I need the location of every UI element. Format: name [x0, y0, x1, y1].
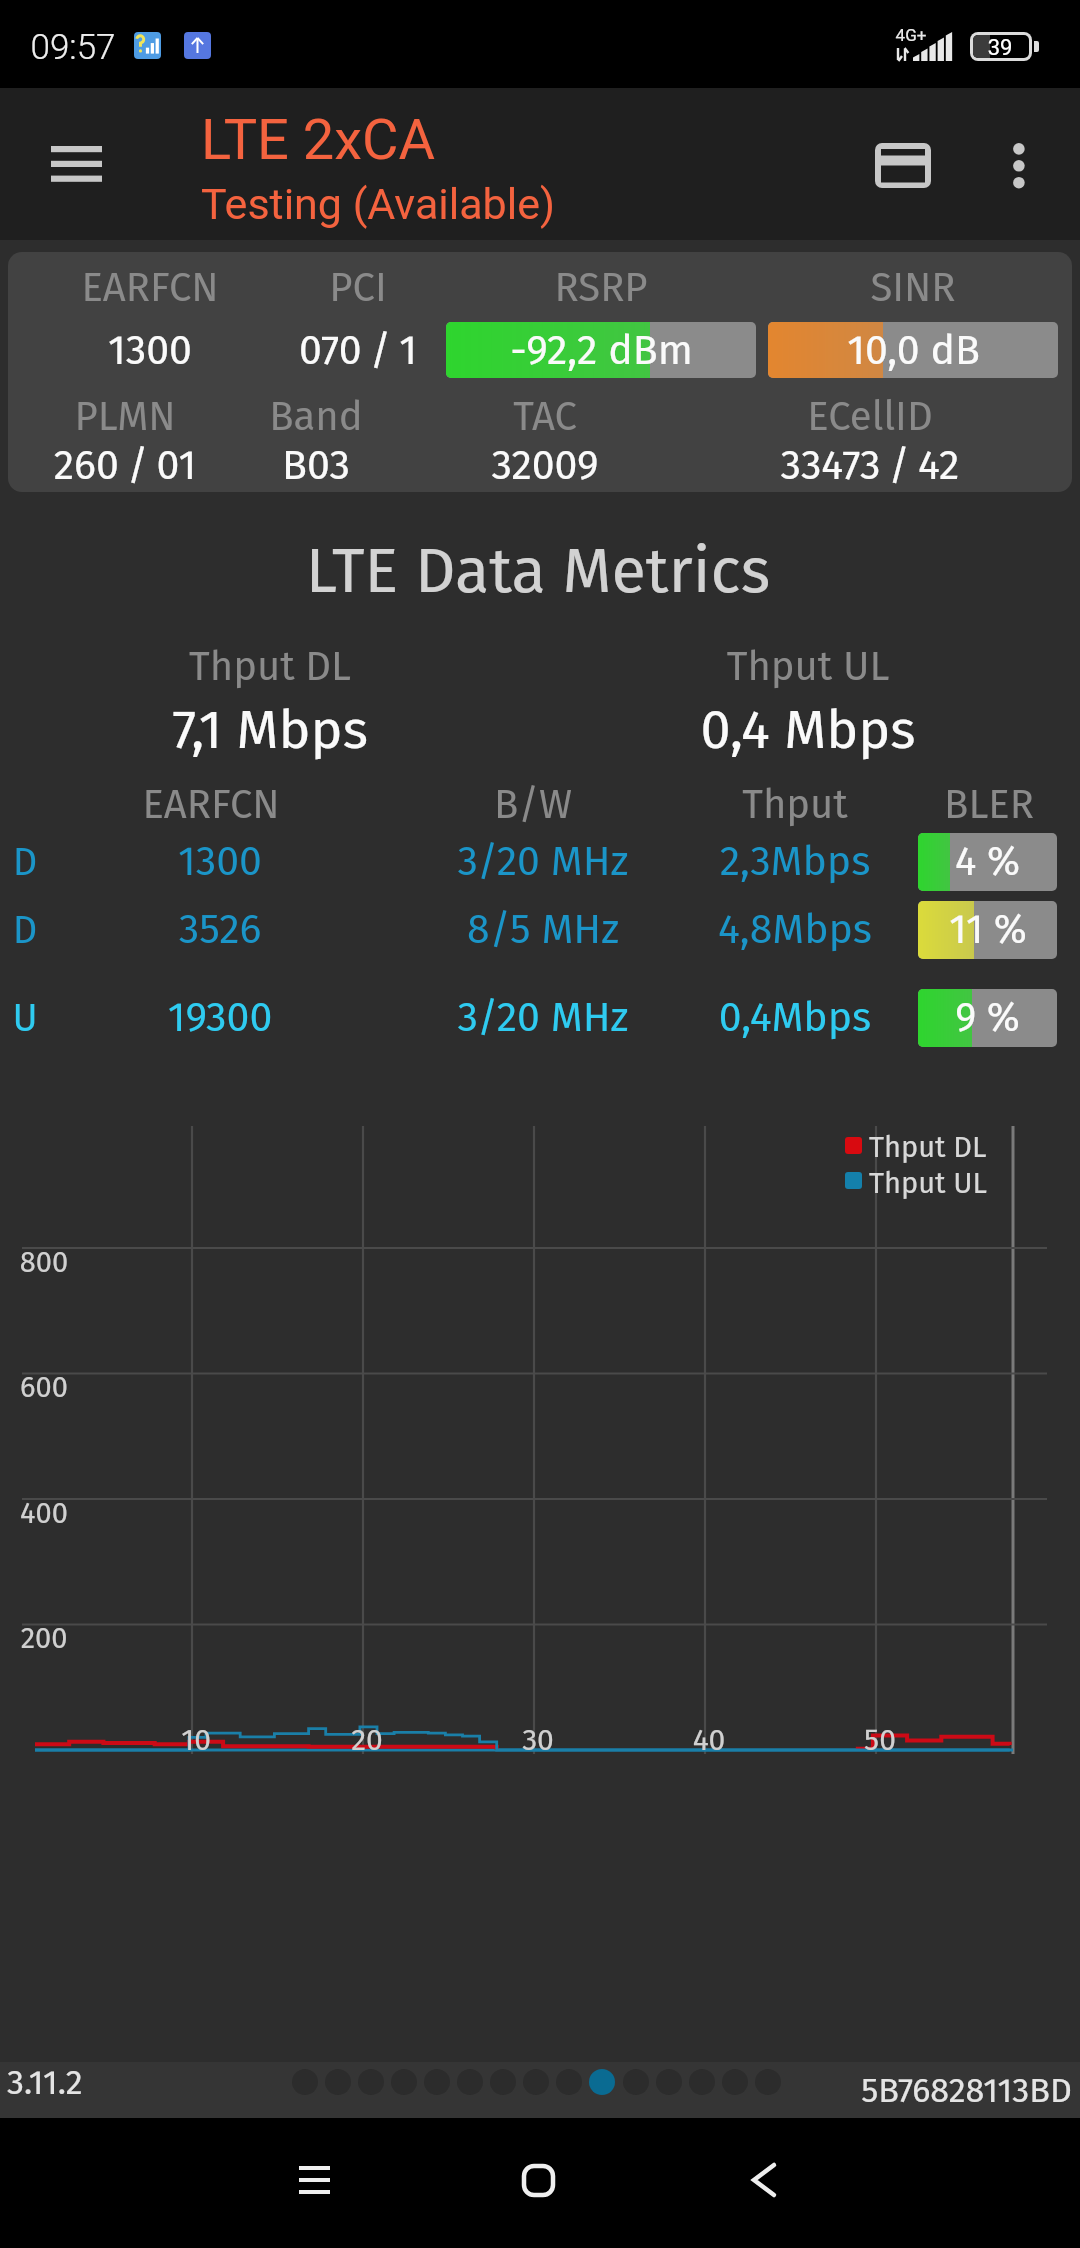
staticText: 260 / 01: [0, 441, 435, 490]
button[interactable]: Change layout: [848, 110, 958, 220]
staticText: Thput: [485, 781, 1080, 829]
button[interactable]: [722, 2069, 748, 2095]
staticText: PCI: [48, 264, 668, 312]
staticText: Testing (Available): [201, 179, 555, 229]
button[interactable]: [8, 252, 1072, 492]
staticText: SINR: [603, 264, 1080, 312]
staticText: LTE 2xCA: [201, 107, 436, 173]
button[interactable]: [755, 2069, 781, 2095]
staticText: B/W: [223, 781, 843, 829]
staticText: 400: [0, 1496, 354, 1531]
staticText: 070 / 1: [48, 326, 668, 375]
staticText: 10: [0, 1722, 506, 1758]
button[interactable]: [292, 2069, 318, 2095]
button[interactable]: [523, 2069, 549, 2095]
staticText: 3/20 MHz: [233, 993, 853, 1042]
button[interactable]: [391, 2069, 417, 2095]
staticText: 4G+: [601, 25, 1080, 45]
button[interactable]: [623, 2069, 649, 2095]
button[interactable]: [589, 2069, 615, 2095]
staticText: 5B76828113BD: [861, 2070, 1072, 2111]
staticText: Thput DL: [0, 643, 580, 691]
staticText: RSRP: [291, 264, 911, 312]
button[interactable]: Open navigation menu: [21, 109, 132, 220]
button[interactable]: More options: [964, 110, 1074, 220]
button[interactable]: [424, 2069, 450, 2095]
staticText: Thput UL: [498, 643, 1080, 691]
staticText: 3.11.2: [7, 2062, 83, 2103]
staticText: LTE Data Metrics: [228, 533, 848, 609]
staticText: 32009: [235, 441, 855, 490]
staticText: 20: [57, 1722, 677, 1758]
button[interactable]: Home: [483, 2125, 593, 2235]
staticText: 1300: [0, 837, 530, 886]
staticText: EARFCN: [0, 781, 521, 829]
staticText: 33473 / 42: [560, 441, 1080, 490]
staticText: 4 %: [955, 838, 1020, 886]
staticText: 11 %: [949, 906, 1027, 954]
staticText: EARFCN: [0, 264, 460, 312]
staticText: 800: [0, 1245, 354, 1280]
staticText: BLER: [679, 781, 1080, 829]
staticText: 0,4 Mbps: [498, 698, 1080, 763]
button[interactable]: [556, 2069, 582, 2095]
staticText: 9 %: [955, 994, 1020, 1042]
staticText: 40: [399, 1722, 1019, 1758]
button[interactable]: Recent apps: [259, 2125, 369, 2235]
staticText: 4,8Mbps: [485, 905, 1080, 954]
button[interactable]: [358, 2069, 384, 2095]
staticText: Thput UL: [869, 1166, 987, 1201]
staticText: PLMN: [0, 393, 435, 441]
staticText: 39: [690, 35, 1080, 61]
button[interactable]: [490, 2069, 516, 2095]
button[interactable]: [325, 2069, 351, 2095]
staticText: 30: [228, 1722, 848, 1758]
staticText: 19300: [0, 993, 530, 1042]
staticText: ECellID: [560, 393, 1080, 441]
staticText: 1300: [0, 326, 460, 375]
staticText: 10,0 dB: [847, 326, 980, 375]
staticText: 50: [570, 1722, 1080, 1758]
staticText: 7,1 Mbps: [0, 698, 580, 763]
staticText: U: [0, 995, 335, 1041]
staticText: 3/20 MHz: [233, 837, 853, 886]
staticText: 2,3Mbps: [485, 837, 1080, 886]
staticText: 09:57: [0, 27, 383, 68]
staticText: 600: [0, 1370, 354, 1405]
staticText: 8/5 MHz: [233, 905, 853, 954]
staticText: TAC: [235, 393, 855, 441]
staticText: Thput DL: [869, 1130, 987, 1165]
button[interactable]: [457, 2069, 483, 2095]
staticText: -92,2 dBm: [510, 326, 693, 375]
button[interactable]: [689, 2069, 715, 2095]
staticText: Band: [6, 393, 626, 441]
button[interactable]: [656, 2069, 682, 2095]
staticText: 3526: [0, 905, 530, 954]
staticText: D: [0, 907, 335, 953]
staticText: 0,4Mbps: [485, 993, 1080, 1042]
staticText: 200: [0, 1621, 354, 1656]
staticText: D: [0, 839, 335, 885]
staticText: B03: [6, 441, 626, 490]
button[interactable]: Back: [709, 2125, 819, 2235]
